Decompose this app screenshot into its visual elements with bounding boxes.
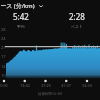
staticText: 13:42 <box>20 83 30 88</box>
staticText: 28 <box>1 27 6 32</box>
staticText: 10 <box>1 73 6 78</box>
staticText: 経過時間 (分:秒) <box>38 91 63 96</box>
staticText: 17 <box>1 54 6 59</box>
staticText: 54:50 <box>82 83 92 88</box>
staticText: 41:07 <box>61 83 71 88</box>
staticText: 2:28 <box>69 11 85 22</box>
staticText: 平均 <box>17 24 25 29</box>
button[interactable]: ペース (分/km) <box>0 1 44 10</box>
staticText: 21 <box>1 45 6 50</box>
staticText: 14 <box>1 64 6 69</box>
staticText: ベスト <box>71 24 83 29</box>
staticText: 5:42 <box>13 11 29 22</box>
staticText: 0:00 <box>0 83 8 88</box>
staticText: ペース (分/km) <box>0 2 35 10</box>
staticText: 27:25 <box>41 83 51 88</box>
staticText: 24 <box>1 36 6 41</box>
